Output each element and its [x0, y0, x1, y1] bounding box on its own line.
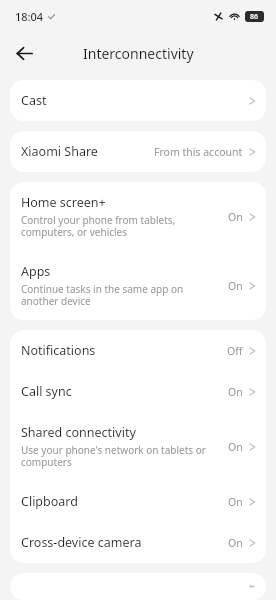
staticText: On [228, 536, 243, 550]
staticText: Use your phone's network on tablets or c… [21, 443, 222, 469]
button[interactable]: Notifications [10, 330, 266, 371]
button[interactable]: Call sync [10, 371, 266, 412]
staticText: On [228, 385, 243, 399]
button[interactable]: Xiaomi Share [10, 131, 266, 172]
staticText: Clipboard [21, 493, 78, 510]
staticText: Interconnectivity [83, 44, 194, 63]
staticText: On [228, 440, 243, 454]
button[interactable]: Cross-device camera [10, 522, 266, 563]
staticText: Xiaomi Share [21, 143, 98, 160]
staticText: From this account [154, 145, 243, 159]
staticText: Off [227, 344, 243, 358]
staticText: 86 [250, 12, 259, 22]
staticText: Home screen+ [21, 194, 106, 211]
button[interactable]: Clipboard [10, 481, 266, 522]
staticText: Call sync [21, 383, 72, 400]
staticText: Shared connectivity [21, 424, 136, 441]
button[interactable]: Back [6, 35, 42, 71]
button[interactable]: Cast [10, 80, 266, 121]
staticText: 18:04 [15, 9, 44, 24]
staticText: On [228, 279, 243, 293]
staticText: On [228, 210, 243, 224]
button[interactable]: Apps [10, 251, 266, 320]
staticText: Continue tasks in the same app on anothe… [21, 282, 222, 308]
staticText: Cross-device camera [21, 534, 142, 551]
button[interactable]: Home screen+ [10, 182, 266, 251]
button[interactable]: Shared connectivity [10, 412, 266, 481]
staticText: Control your phone from tablets, compute… [21, 213, 222, 239]
staticText: Notifications [21, 342, 96, 359]
staticText: Cast [21, 92, 47, 109]
staticText: On [228, 495, 243, 509]
staticText: Apps [21, 263, 51, 280]
